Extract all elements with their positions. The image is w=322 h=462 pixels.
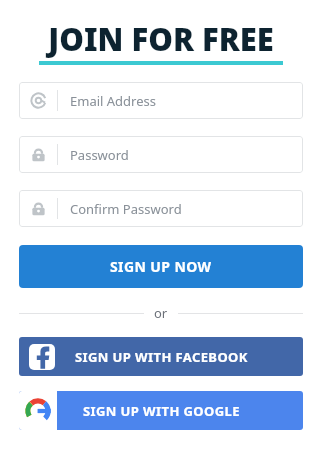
staticText: SIGN UP WITH GOOGLE [83,402,240,420]
staticText: SIGN UP WITH FACEBOOK [75,348,248,366]
button[interactable]: Password [19,136,303,173]
button[interactable]: SIGN UP WITH GOOGLE [19,391,303,430]
button[interactable]: SIGN UP NOW [19,245,303,288]
other: Password [19,136,57,173]
other: Password [19,190,57,227]
button[interactable]: Email [19,82,303,119]
staticText: Password [70,146,129,164]
staticText: Confirm Password [70,200,182,218]
staticText: or [154,304,168,322]
other: Email [19,82,57,119]
staticText: SIGN UP NOW [110,257,212,276]
button[interactable]: SIGN UP WITH FACEBOOK [19,337,303,376]
staticText: Email Address [70,92,156,110]
staticText: JOIN FOR FREE [48,18,274,60]
button[interactable]: Password [19,190,303,227]
